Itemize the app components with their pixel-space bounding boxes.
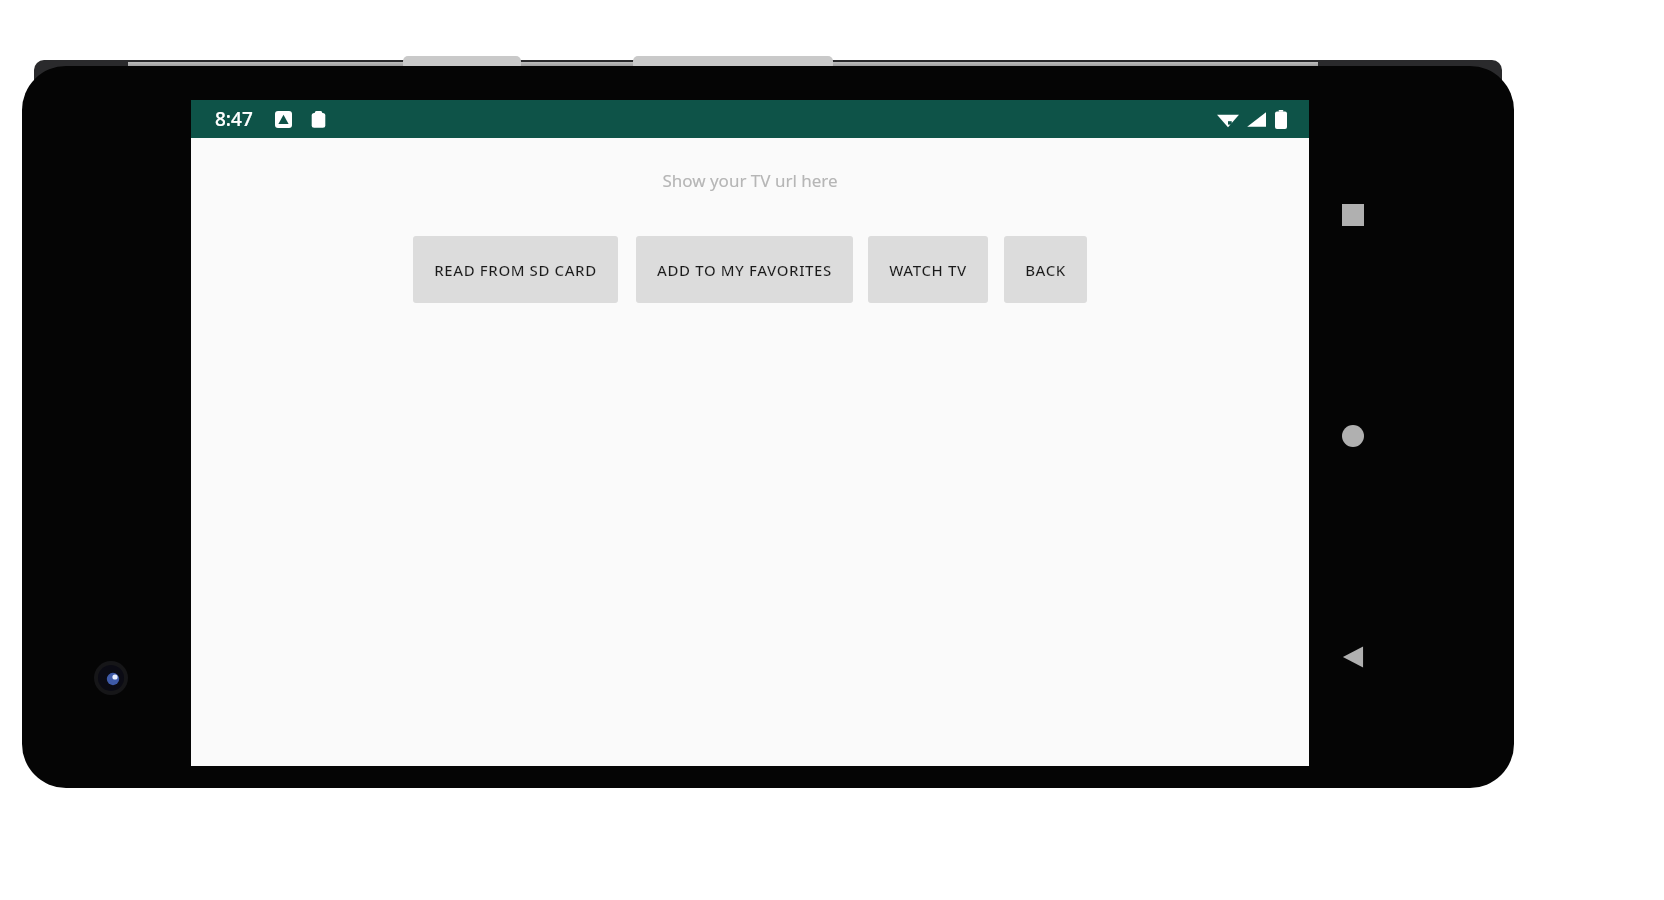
button[interactable]: WATCH TV	[868, 236, 988, 303]
staticText: Show your TV url here	[662, 169, 838, 192]
button[interactable]: ADD TO MY FAVORITES	[636, 236, 853, 303]
button[interactable]: READ FROM SD CARD	[413, 236, 618, 303]
staticText: BACK	[1025, 260, 1066, 280]
staticText: 8:47	[215, 106, 253, 132]
staticText: ADD TO MY FAVORITES	[657, 260, 832, 280]
staticText: WATCH TV	[889, 260, 967, 280]
button[interactable]: BACK	[1004, 236, 1087, 303]
button[interactable]: Back	[1326, 630, 1380, 684]
button[interactable]: Recent apps	[1326, 188, 1380, 242]
button[interactable]: Home	[1326, 409, 1380, 463]
staticText: READ FROM SD CARD	[434, 260, 597, 280]
